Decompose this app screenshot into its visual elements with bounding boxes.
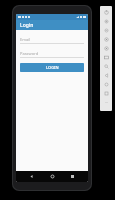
staticText: LOGIN: [46, 65, 59, 70]
button[interactable]: Back: [26, 171, 37, 182]
button[interactable]: VOL_UP: [102, 17, 110, 25]
staticText: Password: [20, 51, 39, 56]
staticText: Email: [20, 37, 31, 42]
button[interactable]: POWER: [102, 8, 110, 16]
button[interactable]: ROTATE_R: [102, 44, 110, 52]
button[interactable]: Password: [20, 50, 84, 58]
button[interactable]: Email: [20, 36, 84, 44]
button[interactable]: ROTATE_L: [102, 35, 110, 43]
button[interactable]: Recent apps: [67, 171, 78, 182]
button[interactable]: OVERVIEW: [102, 89, 110, 97]
button[interactable]: SCREENSHOT: [102, 53, 110, 61]
button[interactable]: HOME: [102, 80, 110, 88]
button[interactable]: MORE: [102, 98, 110, 106]
button[interactable]: Home: [47, 171, 58, 182]
staticText: Login: [20, 22, 34, 29]
button[interactable]: LOGIN: [20, 63, 84, 72]
button[interactable]: BACK: [102, 71, 110, 79]
button[interactable]: VOL_DOWN: [102, 26, 110, 34]
button[interactable]: ZOOM: [102, 62, 110, 70]
